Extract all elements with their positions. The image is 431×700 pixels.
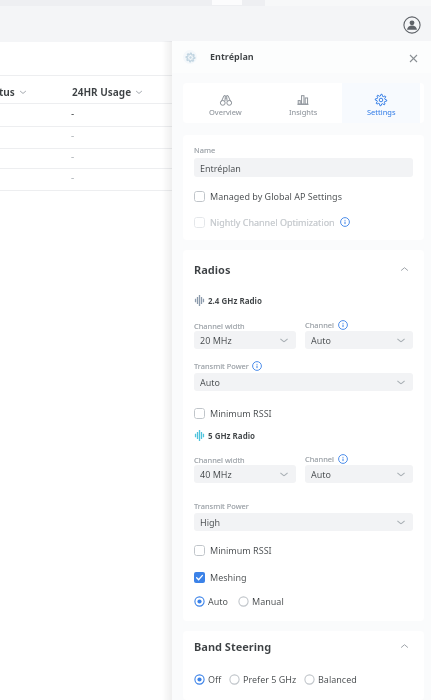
staticText: - xyxy=(71,106,75,120)
staticText: 24HR Usage xyxy=(72,85,132,99)
staticText: - xyxy=(71,149,75,163)
button[interactable]: Nightly Channel Optimization xyxy=(194,215,350,229)
button[interactable]: Minimum RSSI xyxy=(194,543,272,557)
button[interactable]: Managed by Global AP Settings xyxy=(194,189,342,203)
button[interactable]: Close xyxy=(404,48,422,66)
staticText: Entréplan xyxy=(200,162,241,174)
button[interactable]: Minimum RSSI xyxy=(194,406,272,420)
staticText: Manual xyxy=(252,595,284,607)
staticText: Managed by Global AP Settings xyxy=(210,190,342,202)
staticText: Insights xyxy=(289,107,318,117)
button[interactable]: Settings xyxy=(342,83,420,123)
staticText: - xyxy=(71,170,75,184)
button[interactable]: Auto xyxy=(194,373,413,391)
staticText: Minimum RSSI xyxy=(210,407,272,419)
staticText: Band Steering xyxy=(194,639,272,654)
staticText: Off xyxy=(208,673,222,685)
button[interactable]: Prefer 5 GHz xyxy=(229,673,297,685)
staticText: High xyxy=(200,516,221,528)
button[interactable]: Account xyxy=(402,15,422,35)
staticText: Entréplan xyxy=(210,50,254,62)
staticText: Transmit Power xyxy=(194,501,249,511)
staticText: Overview xyxy=(209,107,242,117)
button[interactable]: Auto xyxy=(194,595,229,607)
button[interactable]: Auto xyxy=(305,331,413,349)
staticText: Name xyxy=(194,145,216,155)
button[interactable]: 20 MHz xyxy=(194,331,296,349)
staticText: Channel xyxy=(305,454,335,464)
button[interactable]: Insights xyxy=(264,83,342,123)
staticText: Settings xyxy=(367,107,396,117)
button[interactable]: Overview xyxy=(187,83,264,123)
button[interactable]: 40 MHz xyxy=(194,465,296,483)
button[interactable]: Off xyxy=(194,673,222,685)
staticText: Minimum RSSI xyxy=(210,544,272,556)
button[interactable]: Auto xyxy=(305,465,413,483)
staticText: Meshing xyxy=(210,571,247,583)
staticText: Channel width xyxy=(194,321,245,331)
staticText: Radios xyxy=(194,262,231,277)
button[interactable]: Band Steering xyxy=(194,638,409,654)
staticText: Nightly Channel Optimization xyxy=(210,216,335,228)
staticText: Auto xyxy=(311,468,332,480)
staticText: 2.4 GHz Radio xyxy=(208,295,262,306)
staticText: 5 GHz Radio xyxy=(208,430,256,441)
staticText: Auto xyxy=(200,376,221,388)
button[interactable]: Entréplan xyxy=(194,158,413,177)
staticText: Auto xyxy=(311,334,332,346)
staticText: Channel xyxy=(305,320,335,330)
button[interactable]: High xyxy=(194,513,413,531)
staticText: tus xyxy=(0,85,15,99)
staticText: Channel width xyxy=(194,455,245,465)
staticText: Transmit Power xyxy=(194,361,249,371)
button[interactable]: Manual xyxy=(238,595,284,607)
staticText: - xyxy=(71,128,75,142)
button[interactable]: Balanced xyxy=(304,673,357,685)
staticText: Balanced xyxy=(318,673,357,685)
staticText: 40 MHz xyxy=(200,468,232,480)
staticText: Auto xyxy=(208,595,229,607)
button[interactable]: Radios xyxy=(194,261,409,277)
button[interactable]: Meshing xyxy=(194,570,247,584)
staticText: 20 MHz xyxy=(200,334,232,346)
staticText: Prefer 5 GHz xyxy=(243,673,297,685)
